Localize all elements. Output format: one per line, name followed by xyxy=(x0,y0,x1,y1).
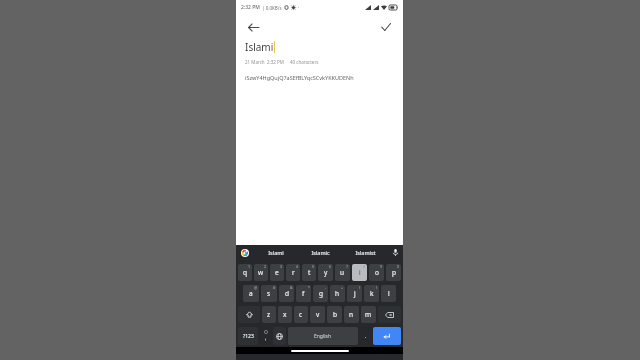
button[interactable]: q xyxy=(238,264,252,281)
button[interactable]: j xyxy=(347,285,362,302)
button[interactable]: v xyxy=(310,306,325,323)
staticText: Islami xyxy=(268,249,284,256)
staticText: 3 xyxy=(280,264,283,269)
staticText: g xyxy=(319,289,323,298)
button[interactable]: s xyxy=(261,285,277,302)
staticText: Islamist xyxy=(355,249,376,256)
button[interactable]: o xyxy=(369,264,384,281)
staticText: 6 xyxy=(329,264,332,269)
staticText: w xyxy=(258,268,264,277)
button[interactable]: Back xyxy=(244,18,262,36)
button[interactable]: l xyxy=(381,285,396,302)
staticText: b xyxy=(333,310,337,319)
button[interactable]: a xyxy=(243,285,259,302)
staticText: · xyxy=(298,4,300,11)
button[interactable]: r xyxy=(286,264,300,281)
staticText: q xyxy=(243,268,247,277)
button[interactable]: English xyxy=(288,327,358,345)
staticText: ?123 xyxy=(243,333,254,340)
staticText: o xyxy=(375,268,379,277)
button[interactable]: i xyxy=(352,264,367,281)
button[interactable]: e xyxy=(270,264,284,281)
staticText: Islamic xyxy=(311,249,330,256)
button[interactable]: Comma xyxy=(260,327,271,345)
staticText: n xyxy=(349,310,354,319)
button[interactable]: y xyxy=(318,264,333,281)
staticText: v xyxy=(316,310,320,319)
staticText: 2 xyxy=(264,264,267,269)
staticText: j xyxy=(354,289,356,298)
staticText: z xyxy=(267,310,271,319)
staticText: y xyxy=(324,268,328,277)
button[interactable]: k xyxy=(364,285,379,302)
staticText: , xyxy=(265,335,267,342)
staticText: k xyxy=(370,289,374,298)
staticText: m xyxy=(365,310,372,319)
staticText: # xyxy=(273,285,276,290)
staticText: English xyxy=(314,333,332,340)
button[interactable]: Islamist xyxy=(343,245,388,260)
staticText: * xyxy=(308,285,310,290)
button[interactable]: Shift xyxy=(238,306,260,323)
staticText: 2:32 PM xyxy=(241,4,260,11)
staticText: 5 xyxy=(312,264,315,269)
staticText: ) xyxy=(376,285,378,290)
button[interactable]: g xyxy=(313,285,328,302)
staticText: & xyxy=(290,285,293,290)
button[interactable]: x xyxy=(278,306,292,323)
staticText: 9 xyxy=(380,264,383,269)
button[interactable]: Islami xyxy=(253,245,298,260)
button[interactable]: p xyxy=(386,264,401,281)
staticText: h xyxy=(335,289,340,298)
staticText: 21 March 2:32 PM xyxy=(245,59,284,65)
staticText: 1 xyxy=(248,264,251,269)
button[interactable]: ?123 xyxy=(238,327,258,345)
staticText: x xyxy=(283,310,287,319)
staticText: f xyxy=(302,289,305,298)
staticText: l xyxy=(388,289,390,298)
button[interactable]: Voice input xyxy=(388,245,403,260)
staticText: u xyxy=(340,268,345,277)
staticText: iSzwY4HgQujQ7aSEfBLYqcSCvkYKKUDENh xyxy=(245,74,354,81)
staticText: c xyxy=(299,310,303,319)
staticText: 40 characters xyxy=(290,59,319,65)
staticText: 0 xyxy=(397,264,400,269)
staticText: e xyxy=(275,268,279,277)
staticText: 8 xyxy=(363,264,366,269)
staticText: | 0.0KB/s xyxy=(262,5,282,11)
staticText: - xyxy=(325,285,327,290)
staticText: @ xyxy=(254,285,258,290)
staticText: 7 xyxy=(346,264,349,269)
button[interactable]: b xyxy=(327,306,342,323)
button[interactable]: Save xyxy=(377,18,395,36)
staticText: + xyxy=(341,285,344,290)
staticText: t xyxy=(308,268,311,277)
button[interactable]: d xyxy=(279,285,294,302)
button[interactable]: Islamic xyxy=(298,245,343,260)
staticText: a xyxy=(249,289,253,298)
button[interactable]: u xyxy=(335,264,350,281)
button[interactable]: c xyxy=(294,306,308,323)
staticText: r xyxy=(292,268,295,277)
button[interactable]: f xyxy=(296,285,311,302)
staticText: d xyxy=(285,289,289,298)
staticText: p xyxy=(392,268,396,277)
button[interactable]: Google xyxy=(236,245,253,260)
button[interactable]: Change language xyxy=(273,327,286,345)
button[interactable]: Backspace xyxy=(378,306,401,323)
staticText: ( xyxy=(359,285,361,290)
staticText: i xyxy=(359,268,361,277)
staticText: . xyxy=(365,333,367,340)
staticText: 4 xyxy=(296,264,299,269)
button[interactable]: Period xyxy=(360,327,371,345)
staticText: Islami xyxy=(245,40,274,54)
button[interactable]: m xyxy=(361,306,376,323)
staticText: s xyxy=(267,289,271,298)
button[interactable]: Enter xyxy=(373,327,401,345)
button[interactable]: w xyxy=(254,264,268,281)
button[interactable]: t xyxy=(302,264,316,281)
button[interactable]: z xyxy=(262,306,276,323)
button[interactable]: n xyxy=(344,306,359,323)
button[interactable]: h xyxy=(330,285,345,302)
